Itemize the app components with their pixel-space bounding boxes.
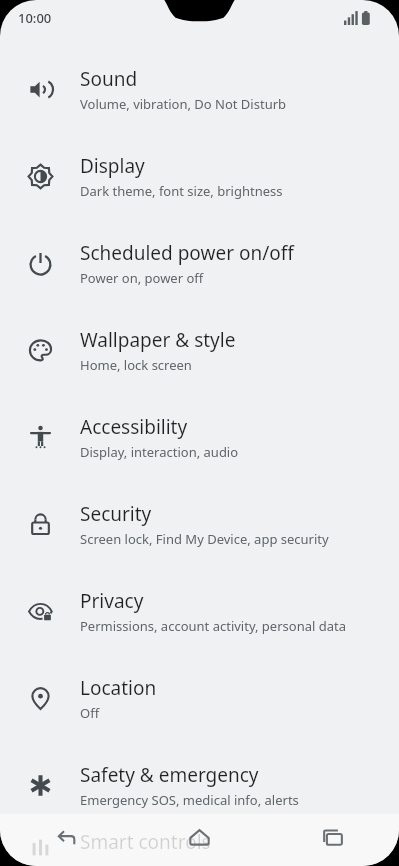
- button[interactable]: Safety & emergency: [0, 742, 399, 829]
- staticText: Display, interaction, audio: [80, 443, 239, 461]
- button[interactable]: Accessibility: [0, 394, 399, 481]
- staticText: Home, lock screen: [80, 356, 192, 374]
- staticText: Dark theme, font size, brightness: [80, 182, 283, 200]
- button[interactable]: Security: [0, 481, 399, 568]
- staticText: Emergency SOS, medical info, alerts: [80, 791, 299, 809]
- button[interactable]: Sound: [0, 46, 399, 133]
- staticText: Location: [80, 675, 157, 701]
- staticText: Safety & emergency: [80, 762, 259, 788]
- button[interactable]: Privacy: [0, 568, 399, 655]
- staticText: Smart controls: [80, 829, 211, 855]
- staticText: Sound: [80, 66, 138, 92]
- button[interactable]: Display: [0, 133, 399, 220]
- staticText: Power on, power off: [80, 269, 204, 287]
- staticText: Accessibility: [80, 414, 188, 440]
- button[interactable]: Scheduled power on/off: [0, 220, 399, 307]
- staticText: Permissions, account activity, personal …: [80, 617, 346, 635]
- staticText: Privacy: [80, 588, 144, 614]
- staticText: 10:00: [18, 9, 52, 27]
- button[interactable]: Wallpaper & style: [0, 307, 399, 394]
- button[interactable]: Back: [0, 814, 133, 866]
- staticText: Security: [80, 501, 152, 527]
- button[interactable]: Smart controls: [0, 829, 399, 866]
- button[interactable]: Recent apps: [266, 814, 399, 866]
- staticText: Screen lock, Find My Device, app securit…: [80, 530, 329, 548]
- button[interactable]: Location: [0, 655, 399, 742]
- staticText: Display: [80, 153, 145, 179]
- button[interactable]: Home: [133, 814, 266, 866]
- staticText: Volume, vibration, Do Not Disturb: [80, 95, 287, 113]
- staticText: Wallpaper & style: [80, 327, 236, 353]
- staticText: Scheduled power on/off: [80, 240, 294, 266]
- staticText: Off: [80, 704, 100, 722]
